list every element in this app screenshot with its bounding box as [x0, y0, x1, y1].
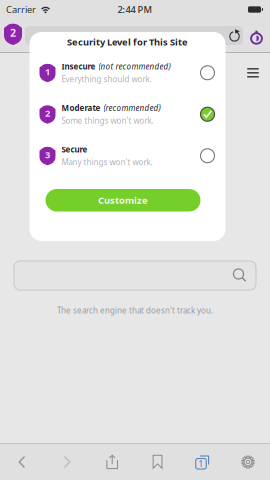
staticText: Carrier [6, 3, 36, 16]
staticText: 2 [45, 107, 50, 119]
staticText: Everything should work. [61, 74, 151, 84]
staticText: Some things won't work. [61, 115, 153, 126]
button[interactable]: Settings [230, 446, 266, 478]
button[interactable]: Share [94, 446, 130, 478]
staticText: (not recommended) [98, 61, 170, 72]
staticText: (recommended) [103, 103, 160, 113]
staticText: 1 [45, 65, 50, 78]
staticText: 2:44 PM [117, 3, 152, 16]
staticText: Security Level for This Site [67, 36, 188, 48]
button[interactable]: Customize [50, 189, 205, 211]
button[interactable]: Tor settings [248, 24, 266, 46]
staticText: Many things won't work. [61, 157, 152, 167]
button[interactable]: Tabs [185, 446, 221, 478]
button[interactable]: 2 [29, 93, 225, 135]
button[interactable]: Reload [226, 24, 244, 46]
button[interactable]: Collapse [208, 61, 230, 85]
staticText: Insecure [61, 61, 95, 72]
staticText: Secure [61, 144, 87, 155]
staticText: Customize [98, 194, 148, 206]
staticText: 3 [45, 148, 50, 161]
button[interactable]: Menu [242, 61, 264, 85]
button[interactable]: Forward [49, 446, 85, 478]
staticText: 2 [10, 26, 16, 40]
staticText: The search engine that doesn't track you… [57, 305, 213, 316]
button[interactable]: 1 [29, 52, 225, 93]
button[interactable]: Bookmarks [140, 446, 176, 478]
button[interactable]: 3 [29, 135, 225, 176]
button[interactable]: Back [4, 446, 40, 478]
staticText: 1 [198, 458, 203, 469]
staticText: Moderate [61, 103, 100, 113]
